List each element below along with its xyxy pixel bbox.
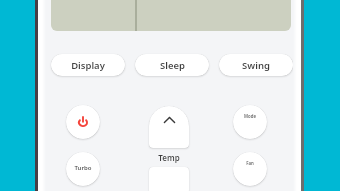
staticText: Display	[71, 59, 105, 72]
button[interactable]: Sleep	[135, 54, 209, 76]
button[interactable]: Swing	[219, 54, 293, 76]
button[interactable]: Fan	[233, 152, 267, 186]
button[interactable]: Temperature up	[149, 106, 189, 148]
staticText: Mode	[244, 113, 256, 119]
staticText: Sleep	[160, 59, 185, 72]
staticText: Turbo	[74, 164, 92, 172]
button[interactable]: Display	[51, 54, 125, 76]
button[interactable]: Turbo	[66, 152, 100, 186]
button[interactable]: Mode	[233, 105, 267, 139]
staticText: Fan	[246, 160, 254, 166]
staticText: Temp	[158, 152, 180, 163]
button[interactable]: Power	[66, 105, 100, 139]
staticText: Swing	[242, 59, 270, 72]
